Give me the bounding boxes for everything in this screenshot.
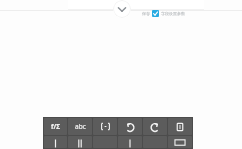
- button[interactable]: Undo: [118, 118, 142, 135]
- staticText: 保存: [142, 11, 150, 16]
- button[interactable]: [168, 136, 192, 148]
- button[interactable]: abc: [68, 118, 92, 135]
- staticText: 字段设置参数: [161, 11, 185, 16]
- button[interactable]: Brackets: [93, 118, 117, 135]
- button[interactable]: f/Σ: [44, 118, 67, 135]
- staticText: f/Σ: [51, 122, 60, 131]
- button[interactable]: [68, 136, 92, 148]
- button[interactable]: Collapse: [113, 0, 131, 18]
- button[interactable]: Redo: [143, 118, 167, 135]
- button[interactable]: [44, 136, 67, 148]
- button[interactable]: [118, 136, 142, 148]
- staticText: abc: [75, 122, 86, 131]
- button[interactable]: Checkbox: [152, 10, 159, 17]
- button[interactable]: Delete: [168, 118, 192, 135]
